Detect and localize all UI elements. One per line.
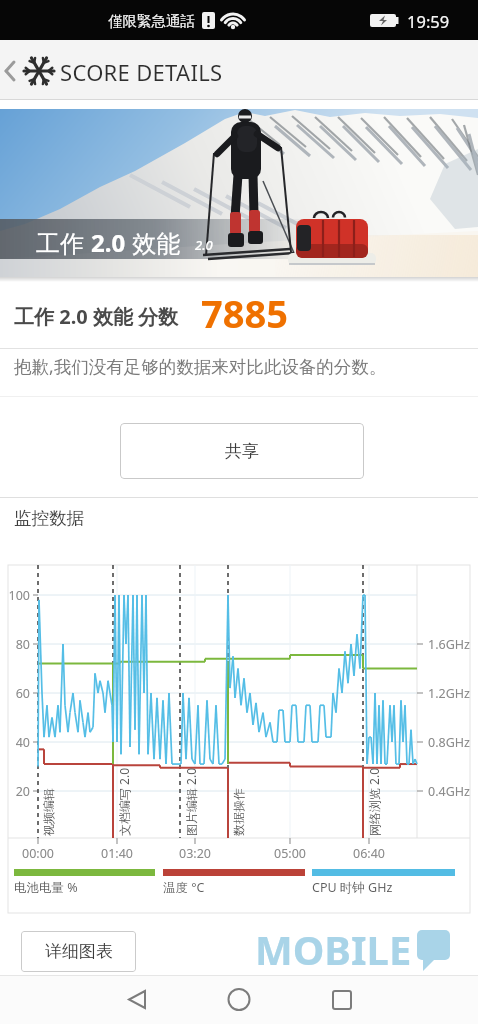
button[interactable]: 共享 <box>120 423 364 479</box>
staticText: 效能 <box>126 226 181 259</box>
staticText: 网络浏览 2.0 <box>366 767 382 836</box>
staticText: 80 <box>1 636 30 653</box>
staticText: 视频编辑 <box>41 788 56 836</box>
staticText: 60 <box>1 685 30 702</box>
button[interactable] <box>209 975 269 1024</box>
staticText: 19:59 <box>407 10 450 32</box>
staticText: 0.4GHz <box>428 783 470 800</box>
staticText: 20 <box>1 783 30 800</box>
staticText: 1.6GHz <box>428 636 470 653</box>
button[interactable] <box>0 40 58 100</box>
staticText: 详细图表 <box>45 941 113 962</box>
staticText: 文档编写 2.0 <box>116 767 132 836</box>
staticText: 100 <box>1 587 30 604</box>
staticText: 数据操作 <box>231 788 246 836</box>
staticText: 05:00 <box>268 845 312 862</box>
staticText: 僅限緊急通話 <box>108 12 195 30</box>
staticText: 抱歉,我们没有足够的数据来对比此设备的分数。 <box>14 354 387 378</box>
staticText: 1.2GHz <box>428 685 470 702</box>
button[interactable]: 详细图表 <box>21 931 136 972</box>
button[interactable] <box>107 975 167 1024</box>
button[interactable] <box>312 975 372 1024</box>
staticText: 温度 °C <box>163 879 205 896</box>
staticText: 图片编辑 2.0 <box>183 767 199 836</box>
staticText: 工作 2.0 效能 分数 <box>14 303 179 330</box>
staticText: MOBILE <box>255 922 412 976</box>
staticText: 01:40 <box>95 845 139 862</box>
staticText: 0.8GHz <box>428 734 470 751</box>
staticText: 2.0 <box>195 236 213 254</box>
staticText: 03:20 <box>173 845 217 862</box>
staticText: SCORE DETAILS <box>60 57 223 87</box>
staticText: 监控数据 <box>14 507 84 529</box>
staticText: 06:40 <box>347 845 391 862</box>
staticText: CPU 时钟 GHz <box>312 879 393 896</box>
staticText: 40 <box>1 734 30 751</box>
staticText: 电池电量 % <box>14 879 78 896</box>
staticText: 共享 <box>225 441 259 462</box>
staticText: 7885 <box>201 287 288 335</box>
staticText: 2.0 <box>91 226 126 259</box>
staticText: 工作 <box>36 226 91 259</box>
staticText: 00:00 <box>16 845 60 862</box>
